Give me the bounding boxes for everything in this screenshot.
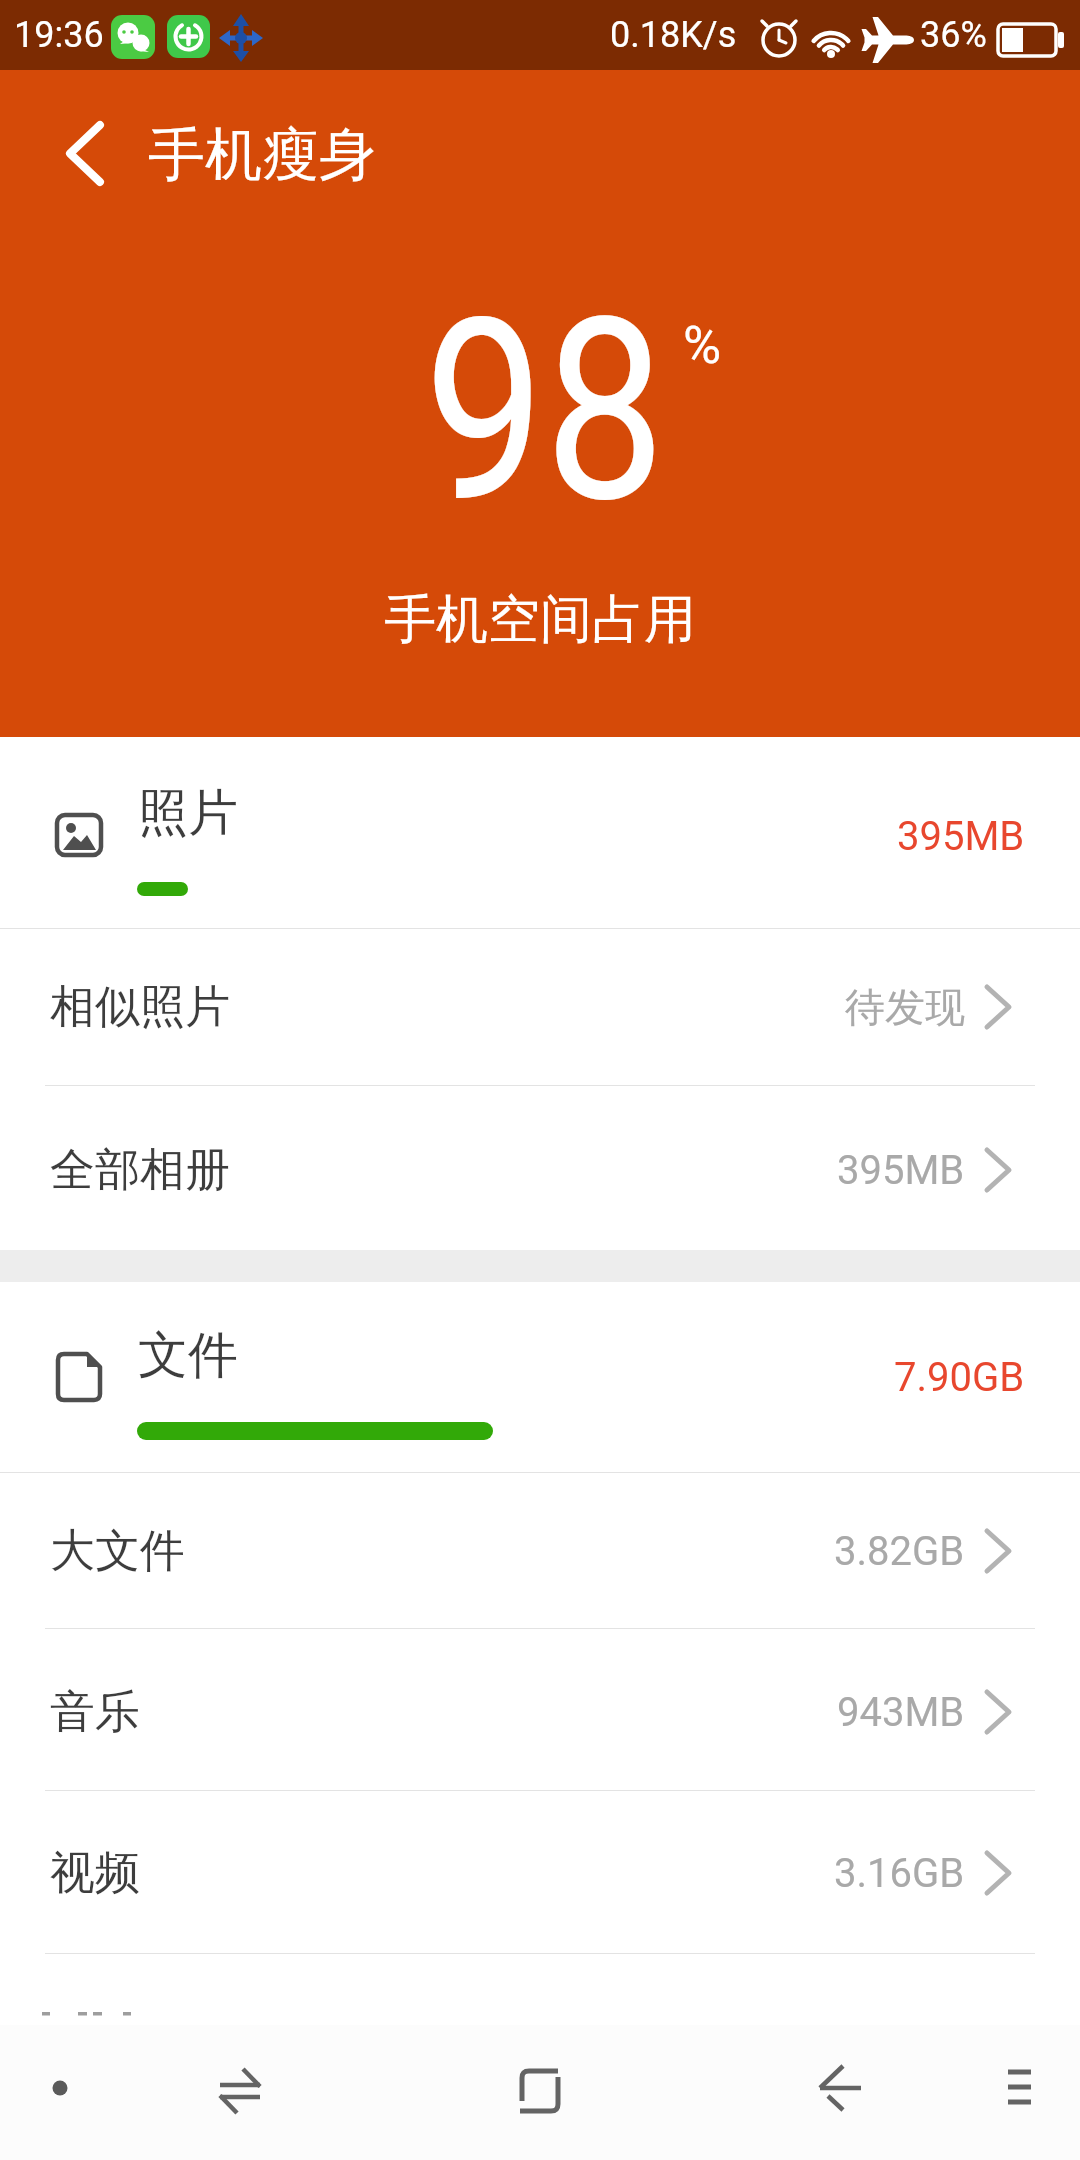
button[interactable]	[800, 2053, 880, 2123]
staticText: 943MB	[837, 1689, 965, 1736]
staticText: 7.90GB	[894, 1354, 1025, 1401]
staticText: 手机瘦身	[148, 119, 376, 191]
staticText: 相似照片	[50, 979, 230, 1036]
staticText: 98	[424, 264, 666, 559]
button[interactable]	[205, 2053, 275, 2123]
staticText: %	[683, 315, 722, 376]
button[interactable]: 相似照片	[0, 929, 1080, 1085]
staticText: 36%	[920, 14, 987, 56]
staticText: 395MB	[897, 813, 1025, 860]
staticText: 19:36	[14, 14, 104, 56]
button[interactable]: 文件	[0, 1282, 1080, 1472]
button[interactable]	[990, 2058, 1050, 2118]
staticText: 文件	[138, 1324, 238, 1387]
button[interactable]: 视频	[0, 1791, 1080, 1953]
staticText: 手机空间占用	[384, 587, 696, 653]
staticText: 音乐	[50, 1684, 140, 1741]
staticText: 照片	[138, 782, 238, 845]
button[interactable]: 照片	[0, 737, 1080, 928]
button[interactable]	[505, 2053, 575, 2123]
button[interactable]: 大文件	[0, 1473, 1080, 1628]
button[interactable]: 全部相册	[0, 1086, 1080, 1250]
staticText: 大文件	[50, 1523, 185, 1580]
staticText: 3.16GB	[834, 1850, 965, 1897]
staticText: 0.18K/s	[610, 14, 737, 56]
staticText: 待发现	[845, 982, 965, 1032]
button[interactable]: 音乐	[0, 1629, 1080, 1790]
staticText: 全部相册	[50, 1142, 230, 1199]
button[interactable]	[48, 105, 128, 205]
staticText: 视频	[50, 1845, 140, 1902]
staticText: 3.82GB	[834, 1528, 965, 1575]
staticText: 395MB	[837, 1147, 965, 1194]
button[interactable]	[30, 2058, 90, 2118]
